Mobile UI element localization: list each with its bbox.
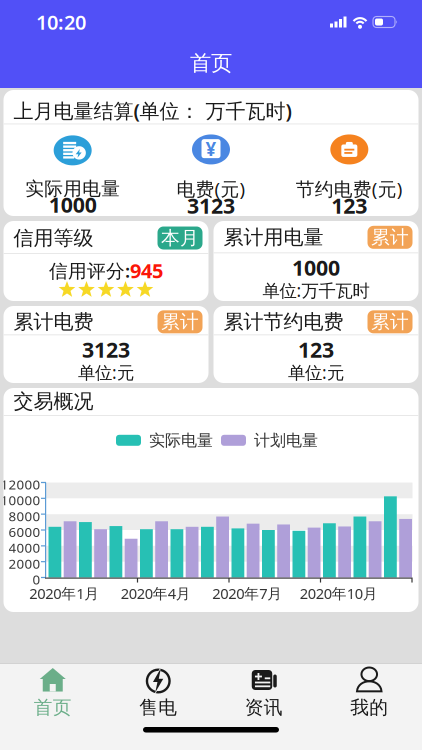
- staticText: 12000: [0, 475, 40, 493]
- staticText: 信用评分:: [49, 258, 130, 283]
- button[interactable]: 售电: [105, 667, 211, 719]
- staticText: 1000: [49, 190, 97, 219]
- staticText: 累计节约电费: [223, 309, 343, 334]
- staticText: 0: [32, 570, 40, 588]
- staticText: 首页: [190, 50, 232, 76]
- staticText: 10000: [0, 491, 40, 509]
- staticText: 我的: [350, 696, 388, 719]
- staticText: 2020年1月: [29, 583, 99, 603]
- staticText: 上月电量结算(单位： 万千瓦时): [13, 97, 291, 124]
- staticText: 945: [130, 257, 163, 284]
- staticText: 8000: [8, 507, 40, 525]
- staticText: 10:20: [36, 9, 86, 35]
- staticText: 资讯: [245, 696, 283, 719]
- staticText: 2000: [8, 555, 40, 572]
- staticText: 累计电费: [13, 309, 93, 334]
- staticText: 4000: [8, 539, 40, 556]
- staticText: 累计用电量: [223, 225, 323, 250]
- staticText: 123: [298, 335, 334, 364]
- staticText: 电费(元): [176, 176, 245, 201]
- staticText: 6000: [8, 523, 40, 541]
- staticText: 2020年10月: [300, 583, 378, 603]
- button[interactable]: 资讯: [211, 667, 316, 719]
- staticText: 累计: [161, 310, 199, 333]
- staticText: 实际电量: [149, 430, 213, 450]
- staticText: 首页: [34, 696, 72, 719]
- staticText: 节约电费(元): [296, 176, 403, 201]
- staticText: ¥: [205, 136, 216, 161]
- staticText: 单位:元: [288, 361, 344, 384]
- staticText: 2020年7月: [212, 583, 282, 603]
- staticText: 信用等级: [13, 226, 93, 250]
- button[interactable]: 我的: [316, 667, 422, 719]
- staticText: 计划电量: [254, 430, 318, 450]
- staticText: 123: [331, 191, 367, 219]
- staticText: 3123: [187, 191, 235, 219]
- staticText: 单位:元: [78, 361, 134, 384]
- staticText: 实际用电量: [25, 177, 120, 200]
- staticText: 单位:万千瓦时: [262, 279, 369, 302]
- staticText: 3123: [82, 335, 130, 364]
- staticText: 交易概况: [13, 389, 93, 414]
- staticText: 累计: [371, 226, 409, 249]
- staticText: 1000: [292, 253, 340, 282]
- staticText: 售电: [139, 696, 177, 719]
- staticText: 累计: [371, 310, 409, 333]
- staticText: 本月: [161, 226, 199, 249]
- staticText: 2020年4月: [121, 583, 191, 603]
- button[interactable]: 首页: [0, 667, 105, 719]
